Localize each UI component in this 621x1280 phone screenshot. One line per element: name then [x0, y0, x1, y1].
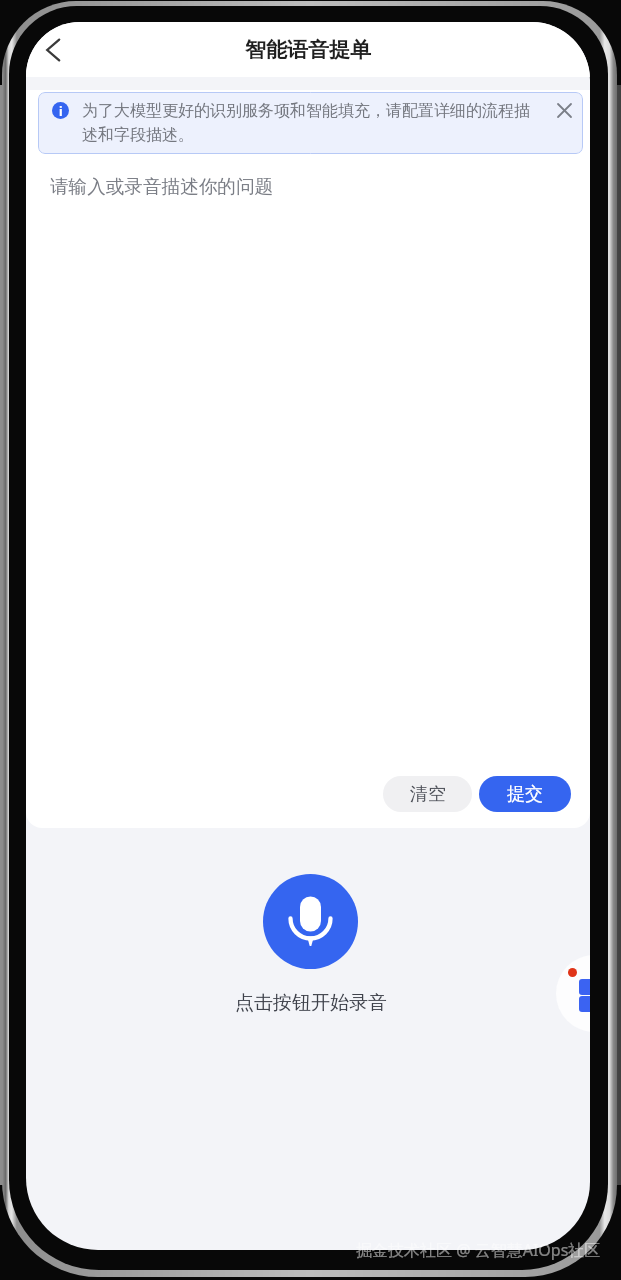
- button[interactable]: Record: [263, 874, 358, 969]
- staticText: 提交: [507, 783, 543, 806]
- staticText: 掘金技术社区 @ 云智慧AIOps社区: [356, 1239, 601, 1261]
- staticText: 为了大模型更好的识别服务项和智能填充，请配置详细的流程描述和字段描述。: [82, 101, 544, 145]
- staticText: 清空: [410, 783, 446, 806]
- staticText: 请输入或录音描述你的问题: [50, 175, 274, 198]
- staticText: 点击按钮开始录音: [235, 991, 387, 1015]
- button[interactable]: Assistant: [556, 955, 590, 1032]
- button[interactable]: Close: [556, 102, 572, 118]
- button[interactable]: 清空: [383, 776, 472, 812]
- staticText: i: [59, 103, 63, 119]
- button[interactable]: Back: [33, 29, 75, 71]
- staticText: 智能语音提单: [245, 37, 371, 63]
- button[interactable]: 提交: [479, 776, 571, 812]
